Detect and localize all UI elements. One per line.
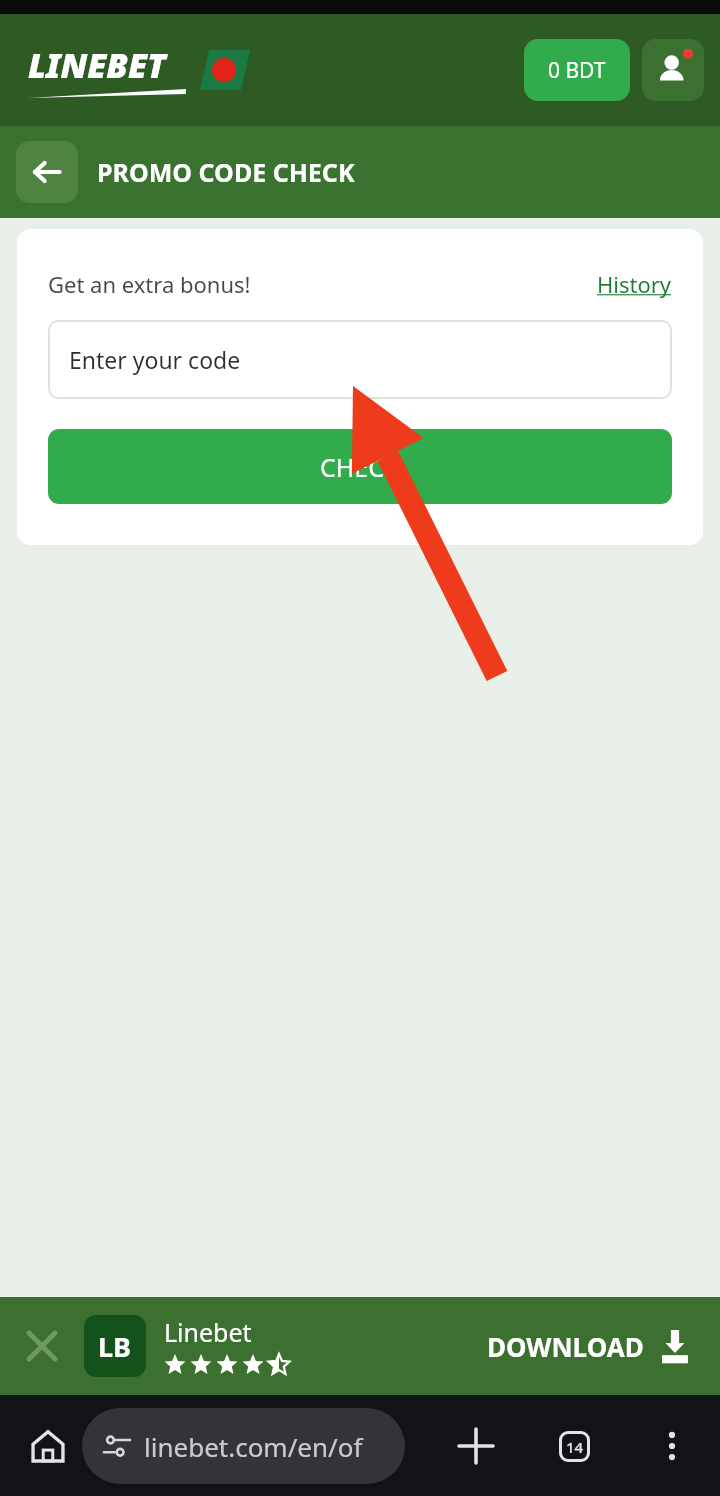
staticText: linebet.com/en/of [144, 1429, 363, 1464]
staticText: LB [98, 1328, 132, 1365]
button[interactable]: Back [16, 141, 78, 203]
staticText: DOWNLOAD [487, 1329, 644, 1364]
staticText: Enter your code [69, 344, 241, 375]
button[interactable]: Close [22, 1326, 62, 1366]
button[interactable]: linebet.com/en/of [82, 1408, 405, 1484]
button[interactable]: New tab [448, 1418, 504, 1474]
button[interactable]: CHECK [48, 429, 672, 504]
staticText: 0 BDT [548, 56, 606, 85]
staticText: History [597, 269, 672, 299]
button[interactable]: 0 BDT [524, 39, 630, 101]
staticText: Linebet [164, 1315, 252, 1349]
staticText: LINEBET [28, 42, 166, 88]
button[interactable]: Home [20, 1418, 76, 1474]
button[interactable]: DOWNLOAD [481, 1321, 698, 1372]
button[interactable]: More options [644, 1418, 700, 1474]
button[interactable]: Profile [642, 39, 704, 101]
button[interactable]: Enter your code [48, 320, 672, 399]
button[interactable]: Tabs, 14 open [546, 1418, 602, 1474]
staticText: PROMO CODE CHECK [97, 155, 355, 189]
staticText: Get an extra bonus! [48, 269, 251, 299]
button[interactable]: History [597, 269, 672, 299]
staticText: CHECK [320, 450, 400, 484]
staticText: 14 [566, 1437, 584, 1457]
